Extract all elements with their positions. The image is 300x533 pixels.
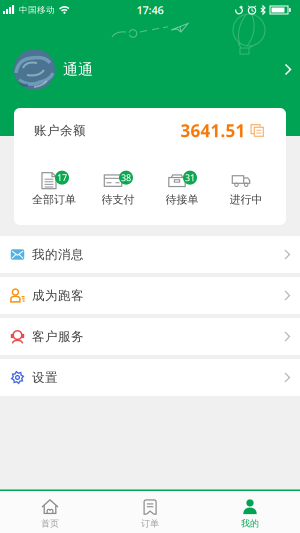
staticText: 中国移动 xyxy=(19,5,55,15)
staticText: 我的 xyxy=(241,518,259,529)
staticText: 首页 xyxy=(41,518,59,529)
button[interactable]: 17 xyxy=(22,167,86,206)
button[interactable]: 首页 xyxy=(0,495,100,529)
button[interactable]: 设置 xyxy=(0,359,300,396)
button[interactable]: 我的 xyxy=(200,495,300,529)
staticText: 17 xyxy=(57,171,67,184)
staticText: 31 xyxy=(185,171,195,184)
button[interactable]: 账户余额 xyxy=(14,108,286,142)
button[interactable]: 订单 xyxy=(100,495,200,529)
button[interactable]: 进行中 xyxy=(214,167,278,206)
staticText: 38 xyxy=(121,171,131,184)
staticText: 待支付 xyxy=(101,193,134,206)
staticText: 我的消息 xyxy=(32,247,84,262)
staticText: 客户服务 xyxy=(32,329,84,344)
staticText: 全部订单 xyxy=(32,193,76,206)
staticText: 账户余额 xyxy=(34,123,86,138)
button[interactable]: 我的消息 xyxy=(0,236,300,273)
staticText: 订单 xyxy=(141,518,159,529)
staticText: 设置 xyxy=(32,370,58,385)
button[interactable]: 成为跑客 xyxy=(0,277,300,314)
staticText: 成为跑客 xyxy=(32,288,84,303)
staticText: 进行中 xyxy=(229,193,262,206)
button[interactable]: 38 xyxy=(86,167,150,206)
button[interactable]: 客户服务 xyxy=(0,318,300,355)
staticText: 17:46 xyxy=(136,2,163,17)
staticText: 3641.51 xyxy=(180,119,245,142)
button[interactable]: 通通 xyxy=(0,49,300,90)
staticText: 通通 xyxy=(63,60,93,79)
button[interactable]: 31 xyxy=(150,167,214,206)
staticText: 待接单 xyxy=(165,193,198,206)
